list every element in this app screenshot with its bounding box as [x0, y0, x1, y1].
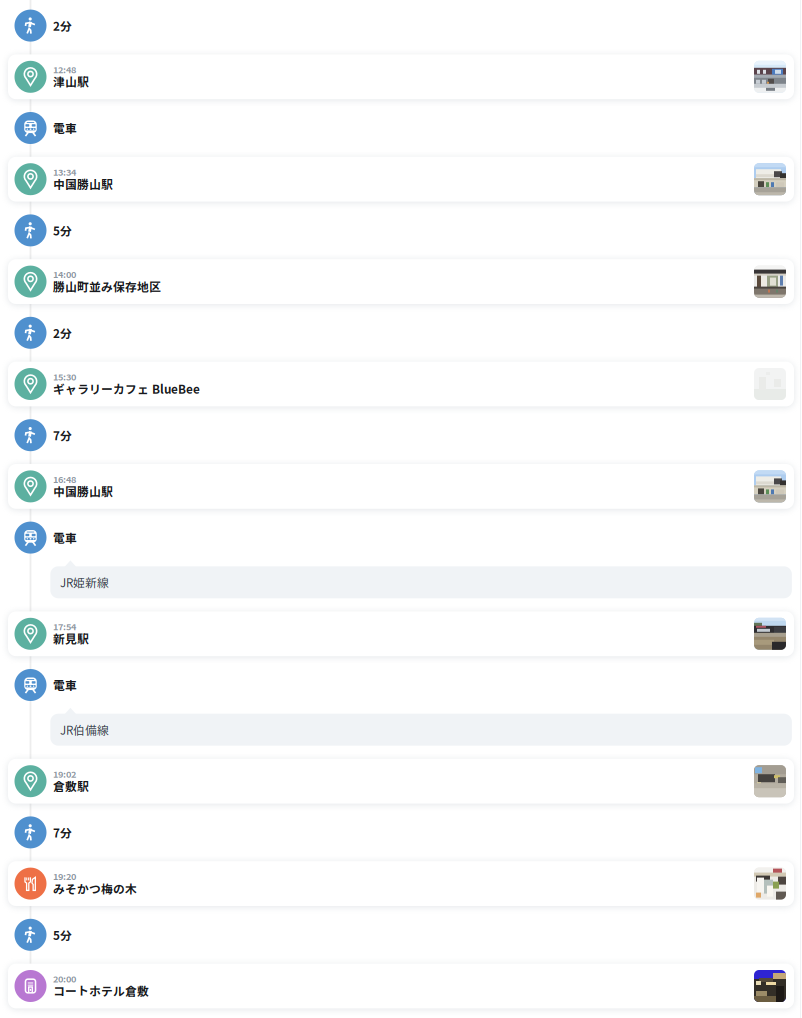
button[interactable]: 電車: [0, 512, 802, 563]
button[interactable]: 7分: [0, 807, 802, 858]
staticText: 13:34: [53, 165, 76, 178]
staticText: 7分: [53, 824, 72, 841]
staticText: 2分: [53, 17, 72, 34]
staticText: 16:48: [53, 472, 76, 485]
staticText: ギャラリーカフェ BlueBee: [53, 380, 200, 397]
staticText: 津山駅: [53, 73, 89, 90]
staticText: 電車: [53, 676, 77, 693]
staticText: JR姫新線: [60, 574, 109, 591]
button[interactable]: 5分: [0, 205, 802, 256]
staticText: 電車: [53, 529, 77, 546]
button[interactable]: 20:00: [0, 960, 802, 1012]
staticText: 新見駅: [53, 630, 89, 647]
staticText: コートホテル倉敷: [53, 982, 149, 999]
button[interactable]: 5分: [0, 909, 802, 960]
staticText: 勝山町並み保存地区: [53, 278, 161, 295]
staticText: 17:54: [53, 620, 76, 633]
button[interactable]: 17:54: [0, 608, 802, 659]
button[interactable]: 2分: [0, 0, 802, 51]
staticText: 中国勝山駅: [53, 175, 113, 192]
staticText: 14:00: [53, 267, 76, 281]
button[interactable]: 16:48: [0, 461, 802, 512]
button[interactable]: 電車: [0, 102, 802, 154]
staticText: 20:00: [53, 972, 76, 985]
button[interactable]: 12:48: [0, 51, 802, 102]
button[interactable]: 電車: [0, 659, 802, 711]
button[interactable]: 19:02: [0, 756, 802, 807]
staticText: 5分: [53, 222, 72, 239]
button[interactable]: 2分: [0, 307, 802, 358]
button[interactable]: 7分: [0, 410, 802, 461]
staticText: 電車: [53, 119, 77, 136]
staticText: 19:02: [53, 767, 76, 780]
staticText: 12:48: [53, 63, 76, 76]
button[interactable]: 14:00: [0, 256, 802, 307]
staticText: 7分: [53, 427, 72, 444]
staticText: JR伯備線: [60, 721, 109, 738]
staticText: 19:20: [53, 869, 76, 883]
staticText: 15:30: [53, 370, 76, 383]
button[interactable]: 13:34: [0, 154, 802, 205]
staticText: みそかつ梅の木: [53, 880, 137, 897]
staticText: 中国勝山駅: [53, 483, 113, 500]
button[interactable]: 15:30: [0, 358, 802, 410]
staticText: 2分: [53, 324, 72, 341]
staticText: 倉敷駅: [53, 777, 89, 794]
staticText: 5分: [53, 926, 72, 943]
button[interactable]: 19:20: [0, 858, 802, 909]
